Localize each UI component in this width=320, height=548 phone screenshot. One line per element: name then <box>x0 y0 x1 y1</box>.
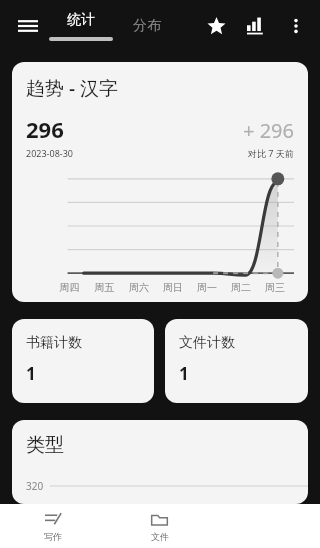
staticText: 1 <box>179 362 189 385</box>
staticText: 320 <box>26 479 44 493</box>
staticText: 写作 <box>44 531 62 542</box>
staticText: 周日 <box>156 281 190 294</box>
staticText: 趋势 - 汉字 <box>26 75 118 101</box>
staticText: 分布 <box>133 17 161 35</box>
button[interactable]: 文件计数 <box>165 319 308 403</box>
staticText: 2023-08-30 <box>26 147 73 159</box>
staticText: 文件计数 <box>179 334 235 352</box>
staticText: 1 <box>26 362 36 385</box>
staticText: 周六 <box>122 281 156 294</box>
button[interactable]: 类型 <box>12 420 308 504</box>
staticText: 周四 <box>52 281 87 294</box>
button[interactable]: More options <box>276 6 316 46</box>
staticText: 周二 <box>224 281 258 294</box>
button[interactable]: Statistics <box>236 6 276 46</box>
staticText: 296 <box>26 114 64 144</box>
staticText: 统计 <box>67 11 95 29</box>
staticText: 书籍计数 <box>26 334 82 352</box>
button[interactable]: 写作 <box>0 504 106 548</box>
staticText: + 296 <box>243 117 294 144</box>
button[interactable]: 书籍计数 <box>12 319 154 403</box>
button[interactable]: 文件 <box>106 504 213 548</box>
button[interactable]: 趋势 - 汉字 <box>12 62 308 302</box>
button[interactable]: Menu <box>8 6 48 46</box>
staticText: 类型 <box>26 433 64 457</box>
button[interactable]: Favorites <box>196 6 236 46</box>
staticText: 周一 <box>190 281 224 294</box>
button[interactable]: 分布 <box>114 0 180 52</box>
staticText: 对比 7 天前 <box>248 147 294 159</box>
staticText: 周三 <box>258 281 292 294</box>
staticText: 周五 <box>87 281 122 294</box>
button[interactable]: 统计 <box>48 0 114 52</box>
staticText: 文件 <box>151 531 169 542</box>
